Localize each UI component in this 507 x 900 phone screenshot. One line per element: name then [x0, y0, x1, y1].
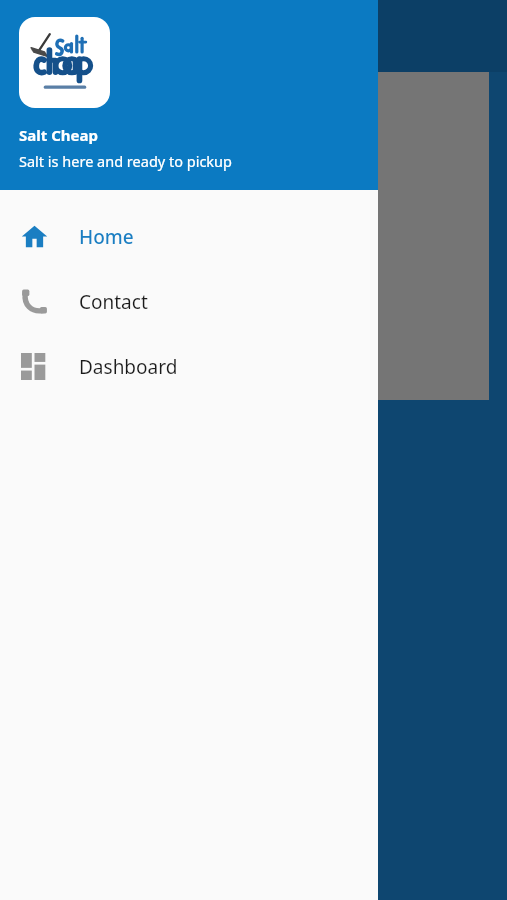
staticText: Salt Cheap — [19, 125, 98, 145]
staticText: Weather in Waterloo — [30, 78, 282, 113]
staticText: Forecast — [30, 290, 149, 331]
button[interactable]: Dashboard — [0, 334, 378, 399]
staticText: Contact — [79, 289, 148, 315]
staticText: -3 — [30, 182, 95, 280]
staticText: Celsius — [30, 121, 86, 144]
staticText: Home — [79, 224, 134, 250]
button[interactable]: Home — [0, 204, 378, 269]
staticText: Dashboard — [79, 354, 178, 380]
button[interactable]: Contact — [0, 269, 378, 334]
staticText: Salt is here and ready to pickup — [19, 151, 232, 171]
